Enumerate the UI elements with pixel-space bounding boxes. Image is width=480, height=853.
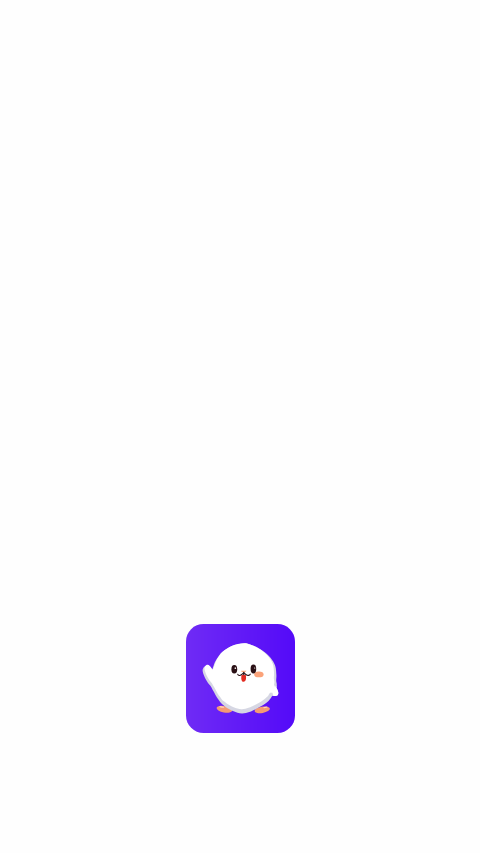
button[interactable]: App logo	[186, 624, 295, 733]
